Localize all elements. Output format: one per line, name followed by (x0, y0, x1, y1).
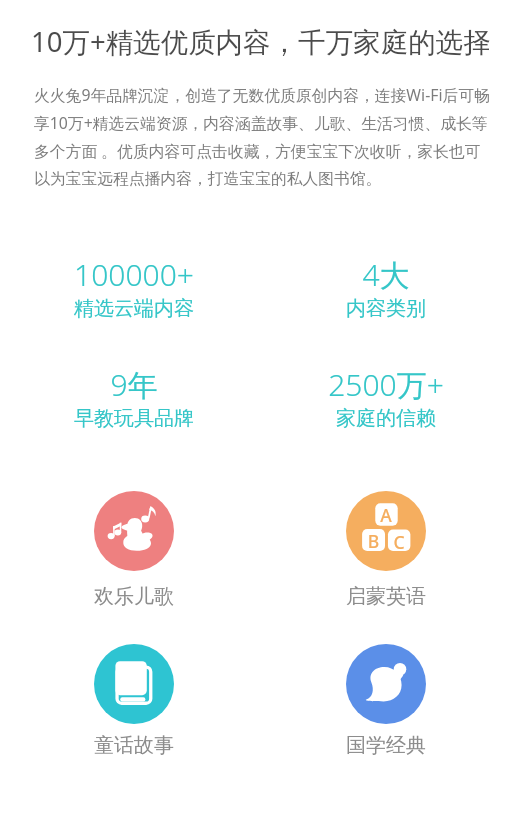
button[interactable]: 国学经典 (256, 644, 516, 758)
other: 童话故事 (94, 644, 174, 724)
other: 国学经典 (346, 644, 426, 724)
staticText: 火火兔9年品牌沉淀，创造了无数优质原创内容，连接Wi-Fi后可畅享10万+精选云… (34, 84, 491, 189)
staticText: 国学经典 (346, 733, 426, 758)
staticText: A (375, 503, 397, 527)
staticText: 10万+精选优质内容，千万家庭的选择 (31, 23, 491, 61)
staticText: 100000+ (74, 254, 194, 295)
staticText: 4大 (362, 254, 410, 295)
staticText: 家庭的信赖 (336, 406, 436, 431)
staticText: 童话故事 (94, 733, 174, 758)
staticText: 早教玩具品牌 (74, 406, 194, 431)
staticText: 欢乐儿歌 (94, 584, 174, 609)
button[interactable]: 欢乐儿歌 (4, 491, 264, 609)
other: 启蒙英语 (346, 491, 426, 571)
staticText: 精选云端内容 (74, 296, 194, 321)
staticText: 启蒙英语 (346, 584, 426, 609)
staticText: 9年 (110, 364, 158, 405)
staticText: C (388, 530, 410, 554)
staticText: 2500万+ (328, 364, 444, 405)
other: 欢乐儿歌 (94, 491, 174, 571)
button[interactable]: 启蒙英语 (256, 491, 516, 609)
staticText: 内容类别 (346, 296, 426, 321)
staticText: B (362, 529, 385, 553)
button[interactable]: 童话故事 (4, 644, 264, 758)
